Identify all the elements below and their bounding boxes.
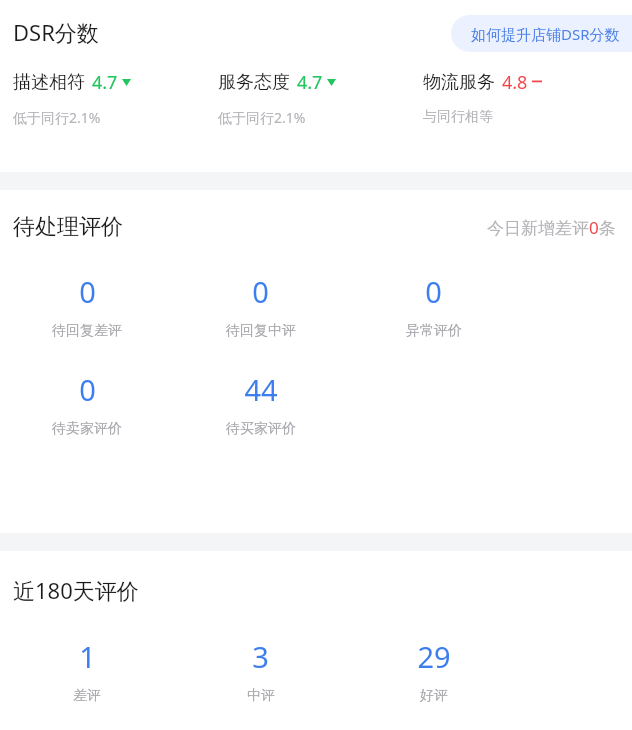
staticText: 待卖家评价	[52, 420, 122, 438]
staticText: 0	[252, 272, 269, 311]
staticText: 4.7	[297, 70, 323, 95]
staticText: 44	[244, 370, 278, 409]
staticText: 异常评价	[406, 322, 462, 340]
button[interactable]: 物流服务	[423, 70, 632, 126]
staticText: 中评	[247, 687, 275, 705]
staticText: 4.7	[92, 70, 118, 95]
button[interactable]: 0	[174, 272, 347, 340]
staticText: 低于同行2.1%	[13, 108, 101, 127]
button[interactable]: 0	[0, 370, 174, 438]
staticText: 近180天评价	[13, 575, 139, 605]
staticText: 3	[252, 637, 269, 676]
button[interactable]: 服务态度	[218, 70, 423, 127]
staticText: 与同行相等	[423, 108, 493, 126]
button[interactable]: 29	[347, 637, 520, 705]
staticText: 如何提升店铺DSR分数	[471, 24, 620, 44]
button[interactable]: 描述相符	[13, 70, 218, 127]
button[interactable]: 44	[174, 370, 347, 438]
staticText: 待处理评价	[13, 213, 123, 241]
staticText: 描述相符	[13, 71, 85, 94]
staticText: 29	[417, 637, 451, 676]
staticText: DSR分数	[13, 17, 99, 47]
staticText: 0	[79, 272, 96, 311]
button[interactable]: 1	[0, 637, 174, 705]
staticText: 物流服务	[423, 71, 495, 94]
staticText: 服务态度	[218, 71, 290, 94]
button[interactable]: 0	[0, 272, 174, 340]
button[interactable]: 3	[174, 637, 347, 705]
staticText: 差评	[73, 687, 101, 705]
staticText: 好评	[420, 687, 448, 705]
staticText: 今日新增差评0条	[487, 216, 616, 239]
staticText: 0	[425, 272, 442, 311]
button[interactable]: 0	[347, 272, 520, 340]
staticText: 0	[79, 370, 96, 409]
staticText: 待买家评价	[226, 420, 296, 438]
staticText: 1	[79, 637, 96, 676]
staticText: 待回复差评	[52, 322, 122, 340]
staticText: 低于同行2.1%	[218, 108, 306, 127]
staticText: 4.8	[502, 70, 528, 95]
staticText: 待回复中评	[226, 322, 296, 340]
button[interactable]: 如何提升店铺DSR分数	[451, 15, 632, 52]
